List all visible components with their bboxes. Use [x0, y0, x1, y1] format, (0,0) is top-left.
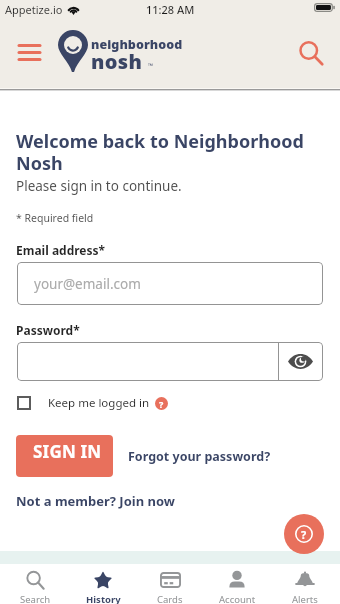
button[interactable]: your@email.com: [17, 262, 323, 305]
button[interactable]: SIGN IN: [16, 435, 113, 477]
staticText: 11:28 AM: [146, 2, 195, 17]
button[interactable]: Search: [3, 564, 67, 604]
button[interactable]: Not a member? Join now: [16, 492, 175, 510]
button[interactable]: History: [71, 564, 135, 604]
staticText: Welcome back to Neighborhood Nosh: [16, 129, 316, 175]
button[interactable]: Alerts: [273, 564, 337, 604]
staticText: Email address*: [16, 242, 106, 258]
staticText: Appetize.io: [5, 2, 63, 17]
staticText: nosh: [91, 48, 143, 75]
staticText: ™: [148, 61, 154, 70]
staticText: neighborhood: [91, 36, 183, 53]
staticText: Please sign in to continue.: [16, 177, 182, 195]
button[interactable]: [17, 342, 323, 381]
staticText: Keep me logged in: [48, 395, 150, 411]
button[interactable]: Keep me logged in: [17, 395, 168, 411]
button[interactable]: Search: [294, 36, 328, 70]
staticText: History: [86, 593, 121, 604]
button[interactable]: Show password: [278, 342, 323, 381]
staticText: Search: [20, 593, 51, 604]
button[interactable]: Menu: [14, 39, 44, 65]
staticText: Alerts: [292, 593, 318, 604]
staticText: Cards: [157, 593, 183, 604]
staticText: Password*: [16, 322, 80, 338]
staticText: ?: [159, 398, 164, 410]
button[interactable]: Account: [205, 564, 269, 604]
staticText: * Required field: [16, 211, 94, 225]
staticText: SIGN IN: [33, 440, 102, 463]
button[interactable]: More info: [155, 397, 168, 410]
staticText: Account: [219, 593, 256, 604]
button[interactable]: Help: [284, 514, 324, 554]
button[interactable]: Forgot your password?: [128, 448, 271, 465]
staticText: ?: [301, 527, 307, 542]
button[interactable]: Cards: [138, 564, 202, 604]
staticText: your@email.com: [34, 275, 141, 293]
